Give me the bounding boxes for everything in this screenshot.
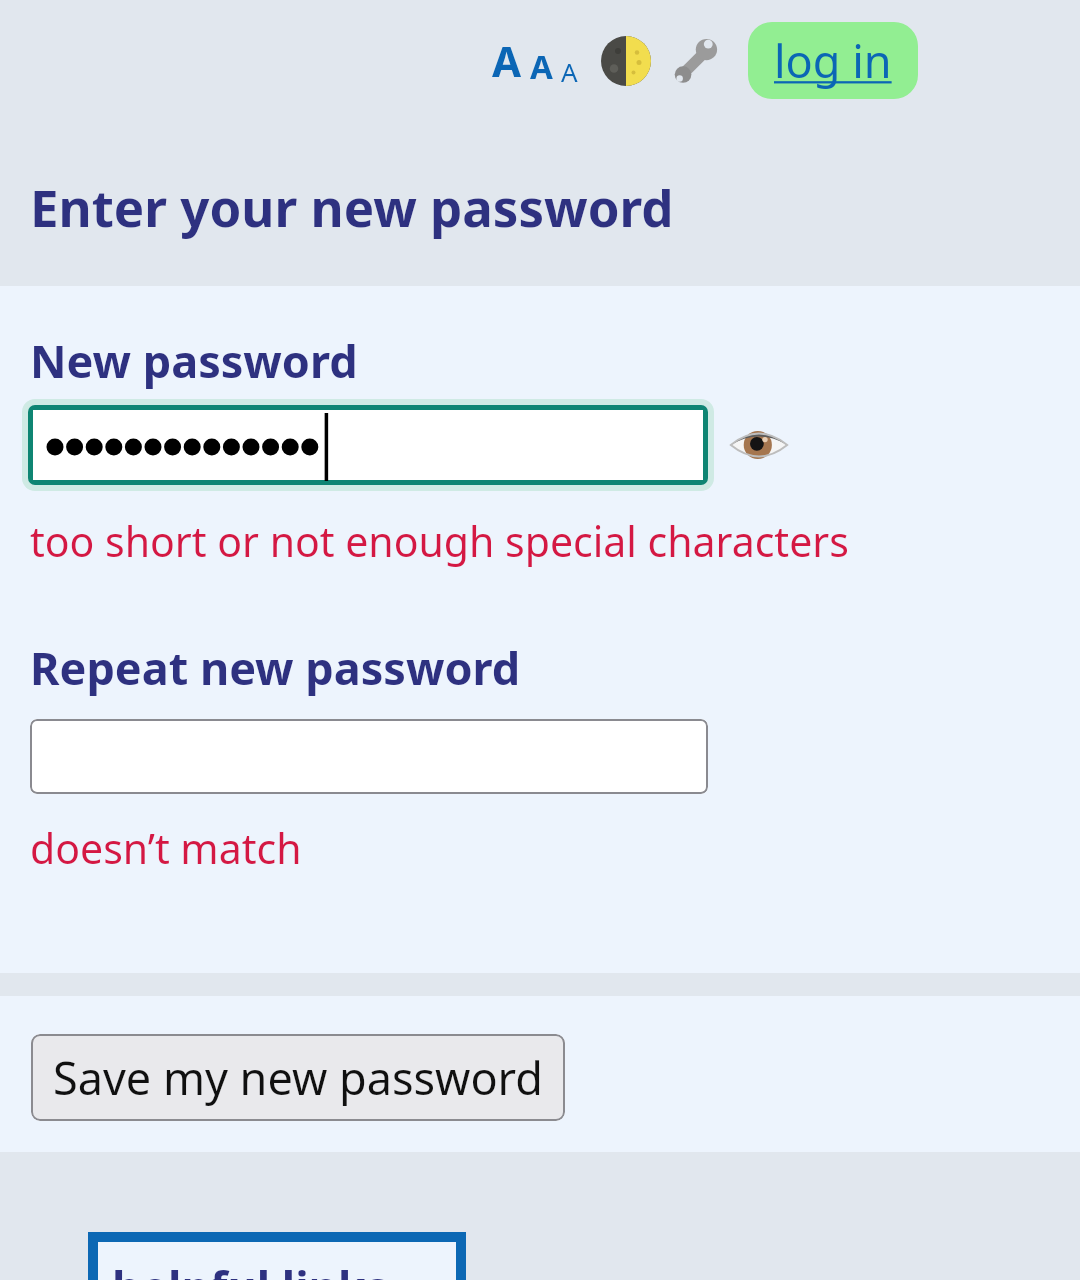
staticText: helpful links — [112, 1256, 389, 1280]
staticText: Repeat new password — [30, 637, 521, 698]
button[interactable]: Show password — [727, 413, 791, 477]
staticText: too short or not enough special characte… — [30, 513, 849, 569]
button[interactable] — [33, 410, 703, 480]
button[interactable]: Toggle dark mode — [598, 33, 654, 89]
staticText: A — [530, 44, 553, 89]
staticText: A — [561, 54, 578, 89]
button[interactable]: Text size — [490, 32, 580, 89]
button[interactable]: helpful links — [98, 1242, 456, 1280]
staticText: log in — [774, 30, 892, 91]
staticText: doesn’t match — [30, 820, 302, 876]
staticText: Enter your new password — [30, 172, 674, 241]
staticText: A — [492, 32, 522, 89]
button[interactable]: log in — [748, 22, 918, 99]
button[interactable] — [30, 719, 708, 794]
button[interactable]: Settings — [666, 32, 724, 90]
button[interactable]: Save my new password — [31, 1034, 565, 1121]
staticText: New password — [30, 330, 358, 391]
staticText: Save my new password — [53, 1047, 543, 1108]
